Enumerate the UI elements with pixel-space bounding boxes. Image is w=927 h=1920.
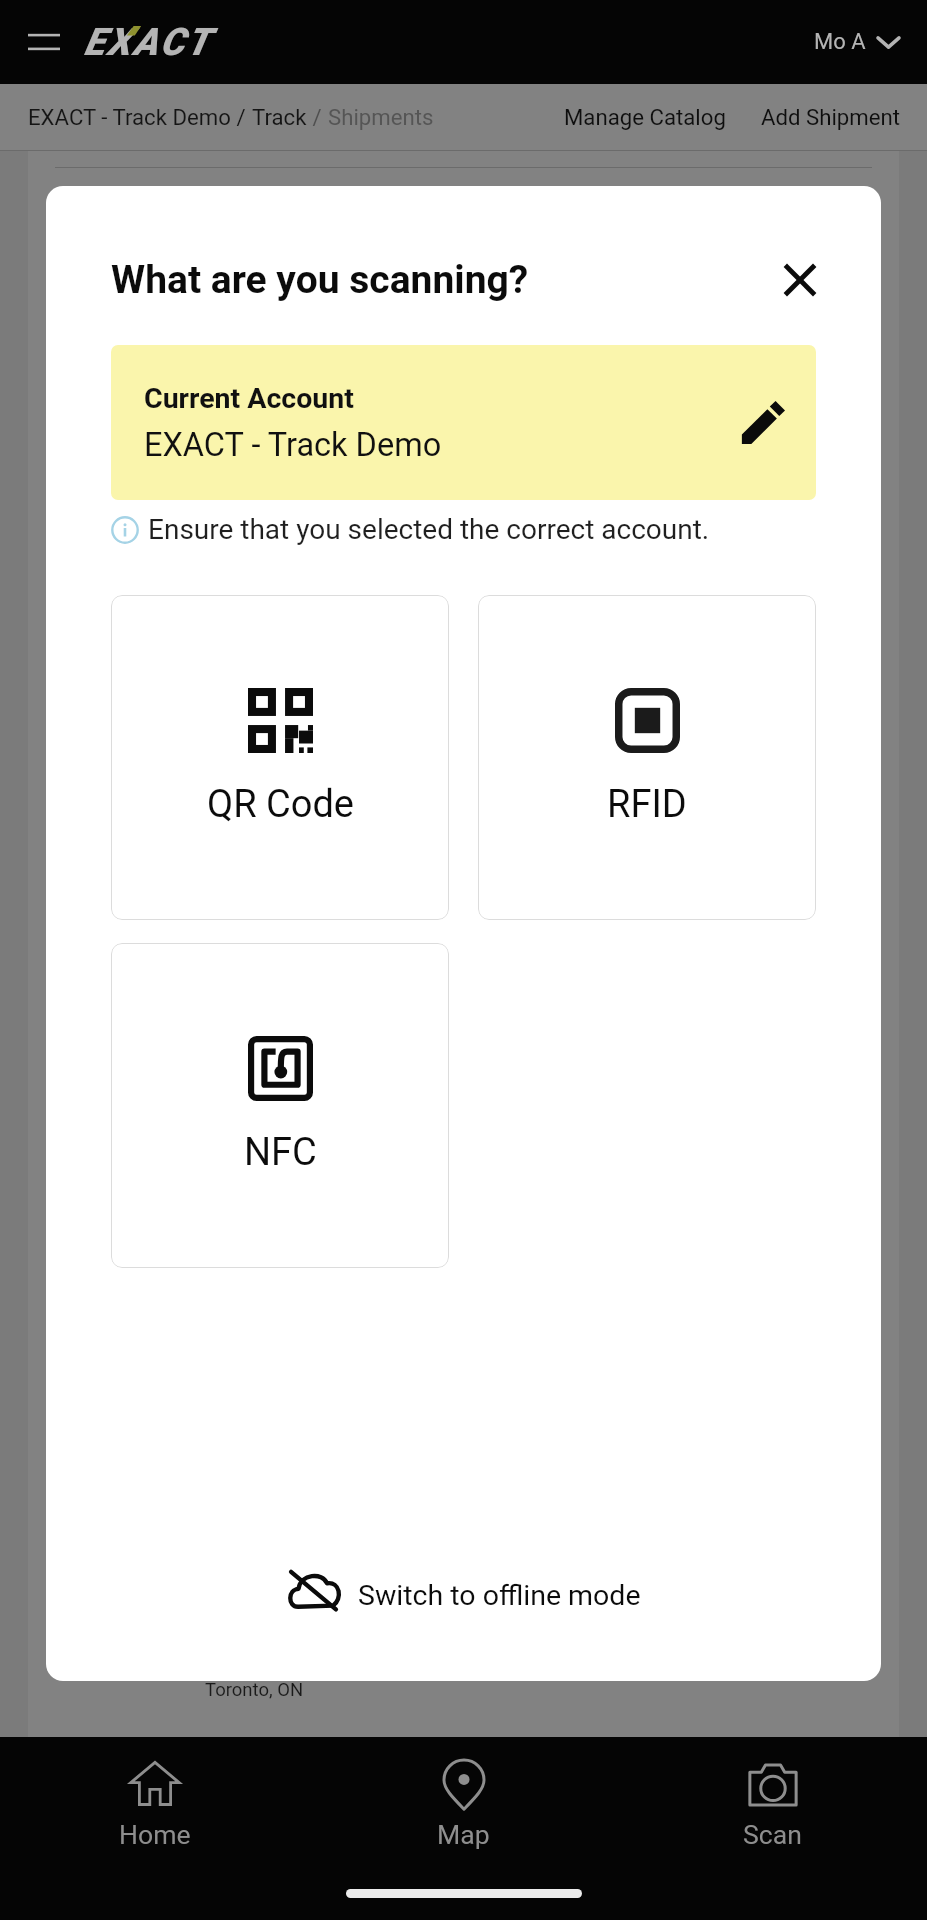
staticText: Switch to offline mode [358,1579,641,1612]
staticText: NFC [244,1130,317,1175]
staticText: Mo A [814,29,866,55]
staticText: What are you scanning? [111,257,529,303]
button[interactable]: Home [0,1753,309,1856]
staticText: Track [252,104,307,130]
button[interactable]: Manage Catalog [564,104,726,130]
button[interactable]: Switch to offline mode [46,1557,881,1633]
staticText: Map [437,1819,490,1850]
staticText: EXACT - Track Demo [144,426,442,464]
button[interactable]: Edit current account [732,392,794,454]
button[interactable]: Map [309,1753,618,1856]
button[interactable]: Open navigation menu [16,14,72,70]
staticText: Ensure that you selected the correct acc… [148,513,710,546]
staticText: Current Account [144,382,354,415]
staticText: Manage Catalog [564,104,726,130]
staticText: / [307,104,328,130]
staticText: Home [119,1819,191,1850]
button[interactable]: RFID [478,595,816,920]
button[interactable]: NFC [111,943,449,1268]
button[interactable]: Scan [618,1753,927,1856]
staticText: EXACT - Track Demo [28,104,231,130]
staticText: / [231,104,252,130]
button[interactable]: Mo A [806,21,899,63]
staticText: Scan [743,1819,802,1850]
staticText: RFID [607,782,687,827]
button[interactable]: Current Account [111,345,816,500]
button[interactable]: EXACT - Track Demo [28,104,231,130]
button[interactable]: Track [252,104,307,130]
button[interactable]: Close [769,249,831,311]
staticText: EXACT [84,20,212,65]
staticText: Shipments [328,104,434,130]
button[interactable]: Add Shipment [761,104,900,130]
staticText: Toronto, ON [205,1679,304,1701]
staticText: QR Code [207,782,354,827]
staticText: Add Shipment [761,104,900,130]
button[interactable]: QR Code [111,595,449,920]
